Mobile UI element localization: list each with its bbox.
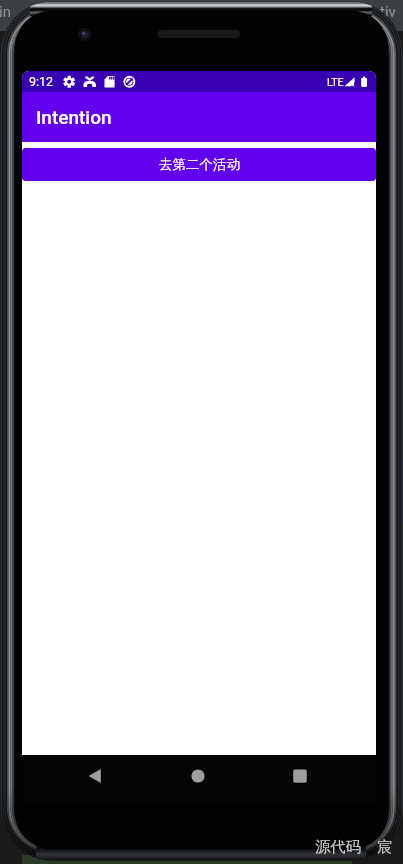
button[interactable]: Home	[174, 752, 222, 800]
staticText: 去第二个活动	[159, 156, 240, 173]
staticText: 源代码	[315, 837, 361, 856]
button[interactable]: 去第二个活动	[22, 148, 376, 181]
staticText: 宸	[377, 837, 393, 856]
button[interactable]: Back	[71, 752, 119, 800]
staticText: tiv	[380, 3, 396, 21]
button[interactable]: Recents	[276, 752, 324, 800]
staticText: Intention	[36, 106, 112, 128]
staticText: LTE	[327, 76, 344, 88]
staticText: 9:12	[29, 74, 54, 89]
staticText: in	[0, 3, 11, 21]
